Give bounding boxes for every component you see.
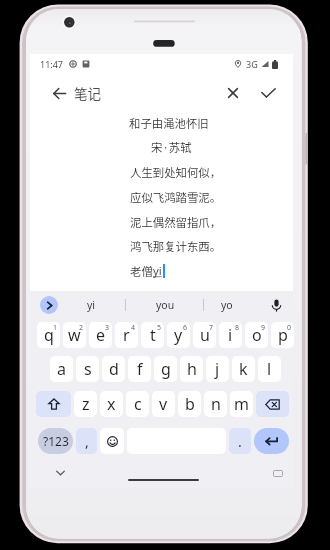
staticText: 应似飞鸿踏雪泥。 bbox=[130, 189, 222, 206]
button[interactable]: h bbox=[180, 356, 203, 382]
button[interactable]: a bbox=[50, 356, 73, 382]
button[interactable]: Backspace bbox=[256, 391, 289, 417]
button[interactable]: w bbox=[63, 322, 86, 348]
button[interactable]: q bbox=[37, 322, 60, 348]
staticText: d bbox=[109, 358, 119, 380]
button[interactable]: i bbox=[219, 322, 242, 348]
staticText: 3G bbox=[246, 58, 258, 70]
staticText: r bbox=[123, 324, 130, 346]
staticText: 5 bbox=[157, 323, 162, 333]
staticText: 6 bbox=[183, 323, 188, 333]
staticText: 8 bbox=[235, 323, 240, 333]
button[interactable]: Back bbox=[46, 80, 72, 106]
staticText: 9 bbox=[261, 323, 266, 333]
button[interactable]: p bbox=[271, 322, 294, 348]
button[interactable]: Shift bbox=[36, 391, 71, 417]
button[interactable]: yo bbox=[207, 291, 247, 318]
button[interactable]: d bbox=[102, 356, 125, 382]
staticText: j bbox=[215, 358, 220, 380]
button[interactable]: s bbox=[76, 356, 99, 382]
staticText: 宋·苏轼 bbox=[151, 139, 192, 156]
staticText: w bbox=[68, 324, 81, 346]
staticText: 鸿飞那复计东西。 bbox=[130, 238, 222, 255]
staticText: s bbox=[84, 358, 92, 380]
button[interactable]: v bbox=[152, 391, 175, 417]
staticText: 7 bbox=[209, 323, 214, 333]
staticText: , bbox=[85, 432, 89, 451]
staticText: p bbox=[278, 324, 288, 346]
button[interactable]: r bbox=[115, 322, 138, 348]
button[interactable]: yi bbox=[59, 291, 123, 318]
staticText: k bbox=[239, 358, 248, 380]
staticText: 0 bbox=[287, 323, 292, 333]
button[interactable]: . bbox=[229, 428, 251, 454]
staticText: y bbox=[174, 324, 183, 346]
button[interactable]: x bbox=[100, 391, 123, 417]
button[interactable]: Save bbox=[255, 80, 281, 106]
staticText: yi bbox=[87, 298, 96, 312]
staticText: m bbox=[234, 393, 249, 415]
staticText: t bbox=[150, 324, 156, 346]
button[interactable]: , bbox=[76, 428, 97, 454]
staticText: z bbox=[82, 393, 90, 415]
button[interactable]: ?123 bbox=[38, 428, 73, 454]
staticText: . bbox=[238, 432, 242, 451]
staticText: u bbox=[200, 324, 210, 346]
button[interactable]: Voice input bbox=[267, 296, 285, 314]
staticText: 老僧 bbox=[130, 263, 153, 280]
staticText: l bbox=[267, 358, 272, 380]
staticText: q bbox=[44, 324, 54, 346]
staticText: yo bbox=[221, 298, 233, 312]
staticText: ?123 bbox=[43, 433, 69, 449]
button[interactable]: t bbox=[141, 322, 164, 348]
staticText: n bbox=[211, 393, 221, 415]
staticText: 人生到处知何似， bbox=[130, 164, 222, 181]
staticText: 笔记 bbox=[74, 83, 101, 103]
staticText: o bbox=[252, 324, 262, 346]
button[interactable]: c bbox=[126, 391, 149, 417]
button[interactable]: y bbox=[167, 322, 190, 348]
staticText: a bbox=[57, 358, 66, 380]
staticText: 2 bbox=[79, 323, 84, 333]
button[interactable]: m bbox=[230, 391, 253, 417]
button[interactable]: o bbox=[245, 322, 268, 348]
button[interactable]: l bbox=[258, 356, 281, 382]
staticText: g bbox=[161, 358, 171, 380]
staticText: yi bbox=[153, 263, 162, 279]
staticText: h bbox=[187, 358, 197, 380]
staticText: 4 bbox=[131, 323, 136, 333]
staticText: you bbox=[156, 298, 175, 312]
button[interactable]: e bbox=[89, 322, 112, 348]
staticText: 1 bbox=[53, 323, 58, 333]
button[interactable]: Discard bbox=[220, 80, 246, 106]
staticText: 11:47 bbox=[40, 58, 64, 70]
staticText: v bbox=[159, 393, 168, 415]
button[interactable]: Emoji bbox=[100, 428, 124, 454]
button[interactable]: g bbox=[154, 356, 177, 382]
staticText: i bbox=[228, 324, 233, 346]
button[interactable]: j bbox=[206, 356, 229, 382]
button[interactable]: b bbox=[178, 391, 201, 417]
button[interactable]: you bbox=[133, 291, 197, 318]
button[interactable]: z bbox=[74, 391, 97, 417]
staticText: 泥上偶然留指爪， bbox=[130, 214, 222, 231]
staticText: 3 bbox=[105, 323, 110, 333]
staticText: f bbox=[137, 358, 143, 380]
staticText: x bbox=[107, 393, 116, 415]
button[interactable]: n bbox=[204, 391, 227, 417]
staticText: 和子由渑池怀旧 bbox=[129, 115, 209, 132]
button[interactable]: u bbox=[193, 322, 216, 348]
staticText: c bbox=[134, 393, 142, 415]
staticText: b bbox=[185, 393, 195, 415]
button[interactable]: Switch keyboard bbox=[271, 466, 285, 480]
staticText: e bbox=[96, 324, 106, 346]
button[interactable]: Hide keyboard bbox=[52, 465, 68, 481]
button[interactable]: Expand candidates bbox=[40, 296, 58, 314]
button[interactable]: Enter bbox=[254, 428, 289, 454]
button[interactable]: f bbox=[128, 356, 151, 382]
button[interactable]: k bbox=[232, 356, 255, 382]
